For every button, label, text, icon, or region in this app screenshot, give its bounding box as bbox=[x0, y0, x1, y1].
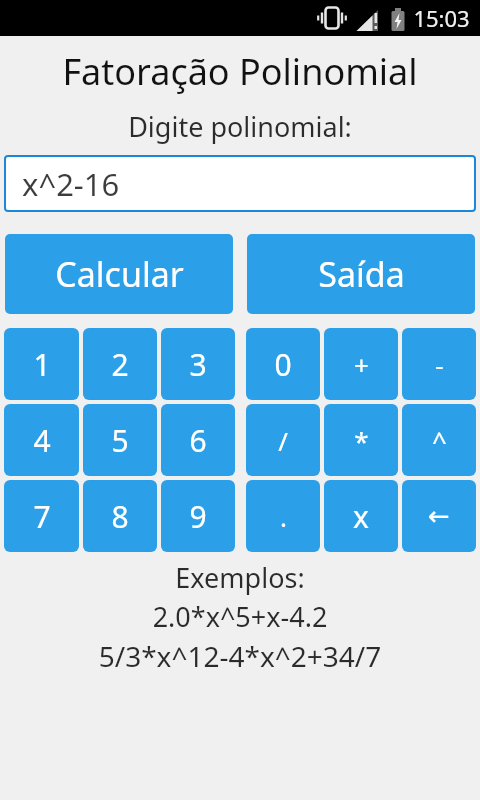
staticText: 3 bbox=[189, 344, 207, 385]
button[interactable]: Saída bbox=[247, 234, 475, 314]
button[interactable]: 8 bbox=[83, 480, 157, 552]
staticText: 8 bbox=[111, 496, 129, 537]
staticText: * bbox=[354, 423, 369, 458]
button[interactable]: * bbox=[324, 404, 398, 476]
staticText: 2 bbox=[111, 344, 129, 385]
staticText: 4 bbox=[33, 420, 51, 461]
staticText: . bbox=[280, 499, 287, 534]
staticText: + bbox=[354, 347, 369, 382]
staticText: - bbox=[435, 347, 444, 382]
staticText: 5 bbox=[111, 420, 129, 461]
staticText: / bbox=[278, 423, 288, 458]
button[interactable]: / bbox=[246, 404, 320, 476]
staticText: 9 bbox=[189, 496, 207, 537]
staticText: ^ bbox=[432, 423, 447, 458]
button[interactable]: 6 bbox=[161, 404, 235, 476]
staticText: 6 bbox=[189, 420, 207, 461]
button[interactable]: 5 bbox=[83, 404, 157, 476]
button[interactable]: ← bbox=[402, 480, 476, 552]
staticText: Digite polinomial: bbox=[128, 108, 352, 145]
button[interactable]: 7 bbox=[4, 480, 79, 552]
staticText: Exemplos: bbox=[0, 559, 480, 596]
button[interactable]: 1 bbox=[4, 328, 79, 400]
staticText: ← bbox=[428, 501, 450, 531]
staticText: Fatoração Polinomial bbox=[62, 47, 418, 96]
button[interactable]: 4 bbox=[4, 404, 79, 476]
button[interactable]: x^2-16 bbox=[4, 155, 476, 212]
button[interactable]: Calcular bbox=[5, 234, 233, 314]
button[interactable]: - bbox=[402, 328, 476, 400]
staticText: 7 bbox=[33, 496, 51, 537]
staticText: 1 bbox=[33, 344, 51, 385]
staticText: 15:03 bbox=[413, 3, 470, 33]
button[interactable]: 3 bbox=[161, 328, 235, 400]
staticText: 5/3*x^12-4*x^2+34/7 bbox=[0, 637, 480, 675]
staticText: 0 bbox=[274, 344, 292, 385]
button[interactable]: . bbox=[246, 480, 320, 552]
staticText: x bbox=[353, 496, 369, 537]
button[interactable]: 0 bbox=[246, 328, 320, 400]
button[interactable]: ^ bbox=[402, 404, 476, 476]
staticText: Calcular bbox=[55, 251, 184, 297]
button[interactable]: 9 bbox=[161, 480, 235, 552]
staticText: Saída bbox=[318, 251, 405, 297]
staticText: 2.0*x^5+x-4.2 bbox=[0, 598, 480, 635]
button[interactable]: x bbox=[324, 480, 398, 552]
button[interactable]: 2 bbox=[83, 328, 157, 400]
button[interactable]: + bbox=[324, 328, 398, 400]
staticText: x^2-16 bbox=[22, 163, 120, 205]
